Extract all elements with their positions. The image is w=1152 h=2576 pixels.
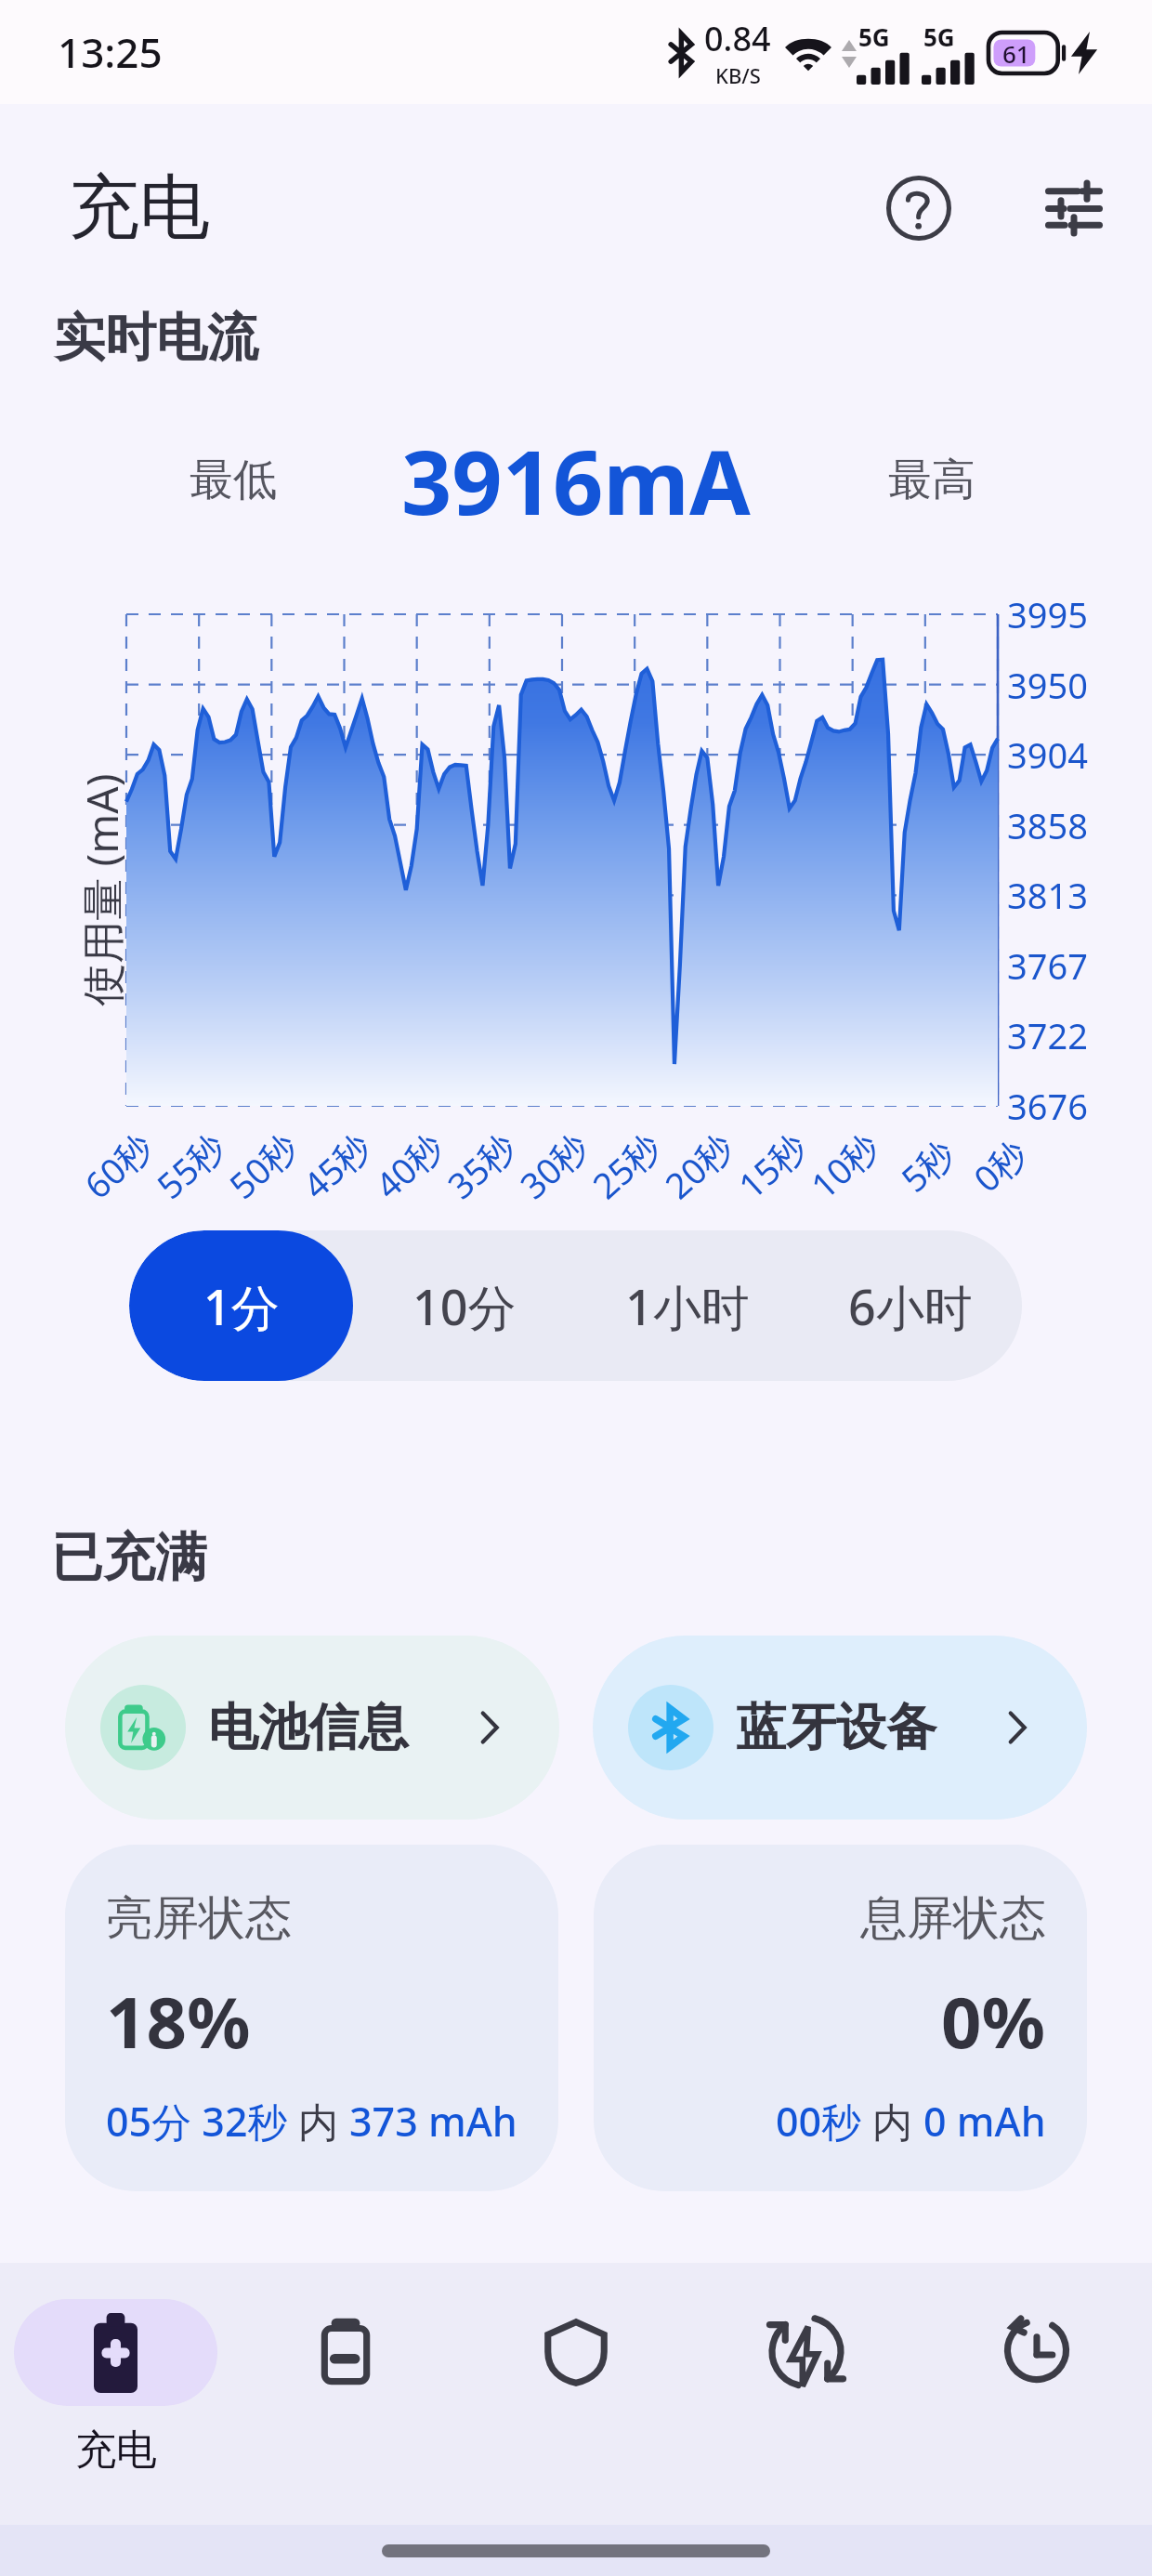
staticText: KB/S xyxy=(715,61,761,89)
button[interactable]: Battery xyxy=(230,2263,461,2525)
staticText: 息屏状态 xyxy=(860,1889,1046,1948)
staticText: 50秒 xyxy=(218,1122,307,1209)
staticText: 5G xyxy=(858,20,890,53)
staticText: 最低 xyxy=(190,453,277,507)
staticText: 内 xyxy=(872,2094,923,2149)
staticText: 373 mAh xyxy=(349,2094,517,2149)
staticText: 1分 xyxy=(203,1273,280,1339)
staticText: 0% xyxy=(941,1973,1046,2070)
staticText: 3950 xyxy=(1007,661,1088,709)
staticText: 内 xyxy=(298,2094,349,2149)
staticText: 3995 xyxy=(1007,590,1088,638)
staticText: 10分 xyxy=(412,1273,517,1339)
staticText: 5秒 xyxy=(890,1129,964,1202)
staticText: 使用量 (mA) xyxy=(72,774,131,1006)
button[interactable]: 1分 xyxy=(129,1230,353,1381)
staticText: 40秒 xyxy=(364,1122,453,1209)
button[interactable]: 蓝牙设备 xyxy=(593,1636,1087,1820)
button[interactable]: 10分 xyxy=(353,1230,576,1381)
button[interactable]: 1小时 xyxy=(576,1230,799,1381)
staticText: 亮屏状态 xyxy=(106,1889,292,1948)
staticText: 充电 xyxy=(69,164,210,253)
staticText: 3858 xyxy=(1007,801,1088,849)
staticText: 00秒 xyxy=(776,2094,872,2149)
staticText: 0秒 xyxy=(963,1129,1037,1202)
staticText: 3916mA xyxy=(401,420,751,522)
staticText: 10秒 xyxy=(800,1122,889,1209)
staticText: 15秒 xyxy=(728,1122,816,1209)
staticText: 电池信息 xyxy=(208,1696,409,1759)
staticText: 05分 32秒 xyxy=(106,2094,298,2149)
button[interactable]: 亮屏状态 xyxy=(65,1845,558,2191)
staticText: 蓝牙设备 xyxy=(736,1696,936,1759)
button[interactable]: 息屏状态 xyxy=(594,1845,1087,2191)
button[interactable]: History xyxy=(922,2263,1152,2525)
staticText: 3813 xyxy=(1007,871,1088,919)
staticText: 35秒 xyxy=(437,1122,526,1209)
staticText: 3767 xyxy=(1007,941,1088,990)
button[interactable]: Help xyxy=(854,143,984,273)
button[interactable]: 电池信息 xyxy=(65,1636,559,1820)
button[interactable]: 6小时 xyxy=(799,1230,1022,1381)
staticText: 45秒 xyxy=(292,1122,381,1209)
staticText: 60秒 xyxy=(73,1122,162,1209)
staticText: 25秒 xyxy=(582,1122,671,1209)
staticText: 0.84 xyxy=(704,16,771,61)
staticText: 6小时 xyxy=(848,1273,973,1339)
staticText: 已充满 xyxy=(51,1525,207,1591)
staticText: 55秒 xyxy=(146,1122,235,1209)
staticText: 1小时 xyxy=(625,1273,750,1339)
staticText: 实时电流 xyxy=(54,306,258,370)
button[interactable]: Charging cycles xyxy=(691,2263,922,2525)
staticText: 最高 xyxy=(888,453,975,507)
staticText: 18% xyxy=(106,1973,251,2070)
staticText: 30秒 xyxy=(509,1122,598,1209)
staticText: 0 mAh xyxy=(923,2094,1046,2149)
button[interactable]: 充电 xyxy=(0,2263,230,2525)
button[interactable]: Settings xyxy=(1009,143,1139,273)
staticText: 3904 xyxy=(1007,730,1088,779)
staticText: 20秒 xyxy=(654,1122,743,1209)
staticText: 5G xyxy=(923,20,955,53)
button[interactable]: Shield xyxy=(461,2263,691,2525)
staticText: 充电 xyxy=(75,2425,157,2476)
staticText: 3722 xyxy=(1007,1011,1088,1059)
staticText: 3676 xyxy=(1007,1082,1088,1130)
staticText: 61 xyxy=(1002,37,1030,70)
staticText: 13:25 xyxy=(58,24,163,80)
